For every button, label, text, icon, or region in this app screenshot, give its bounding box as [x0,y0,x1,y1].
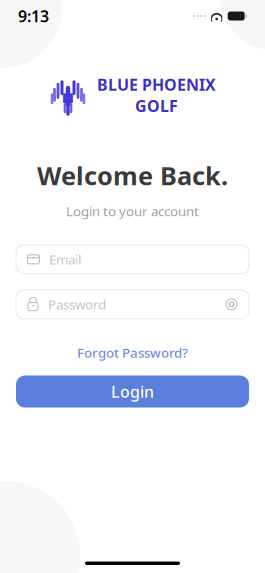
staticText: Forgot Password? [77,344,188,361]
staticText: BLUE PHOENIX [97,74,216,95]
staticText: GOLF [135,95,178,116]
staticText: Welcome Back. [37,158,228,192]
button[interactable]: Forgot Password? [67,340,198,365]
button[interactable]: Show password [225,298,238,311]
button[interactable]: Email [16,245,249,274]
staticText: Login [111,381,154,402]
button[interactable]: Password [27,295,216,313]
staticText: 9:13 [18,5,49,27]
staticText: Email [49,250,81,268]
staticText: Login to your account [66,202,199,220]
staticText: Password [48,295,106,313]
button[interactable]: Login [16,375,249,407]
